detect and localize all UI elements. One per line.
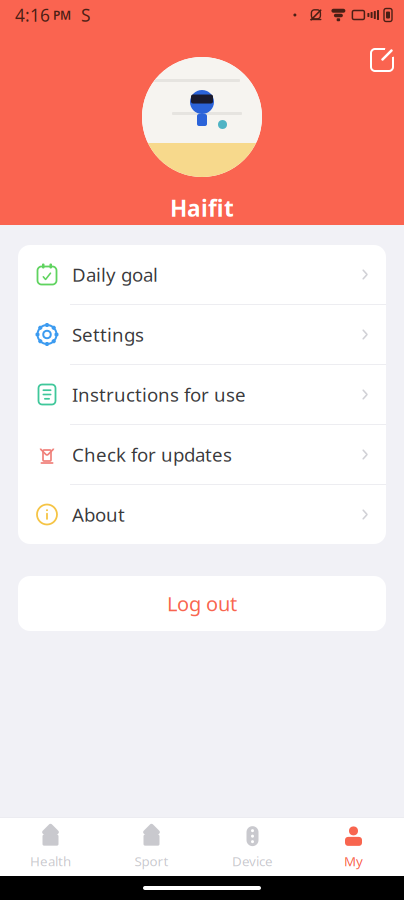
button[interactable]: Sport bbox=[101, 818, 202, 876]
staticText: About bbox=[72, 502, 125, 527]
button[interactable]: Check for updates bbox=[18, 425, 386, 484]
button[interactable]: About bbox=[18, 485, 386, 544]
staticText: Device bbox=[232, 852, 273, 870]
button[interactable]: My bbox=[303, 818, 404, 876]
button[interactable]: Instructions for use bbox=[18, 365, 386, 424]
staticText: Daily goal bbox=[72, 262, 158, 287]
staticText: Sport bbox=[134, 852, 168, 870]
button[interactable]: Daily goal bbox=[18, 245, 386, 304]
button[interactable]: Health bbox=[0, 818, 101, 876]
staticText: Check for updates bbox=[72, 442, 232, 467]
button[interactable]: Device bbox=[202, 818, 303, 876]
staticText: Instructions for use bbox=[72, 382, 246, 407]
staticText: My bbox=[344, 852, 363, 870]
staticText: Haifit bbox=[170, 193, 234, 223]
staticText: Settings bbox=[72, 322, 144, 347]
staticText: S bbox=[81, 3, 91, 26]
staticText: Health bbox=[30, 852, 71, 870]
button[interactable]: Edit profile bbox=[360, 40, 404, 80]
staticText: 4:16 bbox=[15, 3, 50, 26]
button[interactable]: Log out bbox=[18, 576, 386, 631]
staticText: Log out bbox=[167, 590, 237, 617]
button[interactable]: Settings bbox=[18, 305, 386, 364]
staticText: PM bbox=[53, 7, 71, 23]
